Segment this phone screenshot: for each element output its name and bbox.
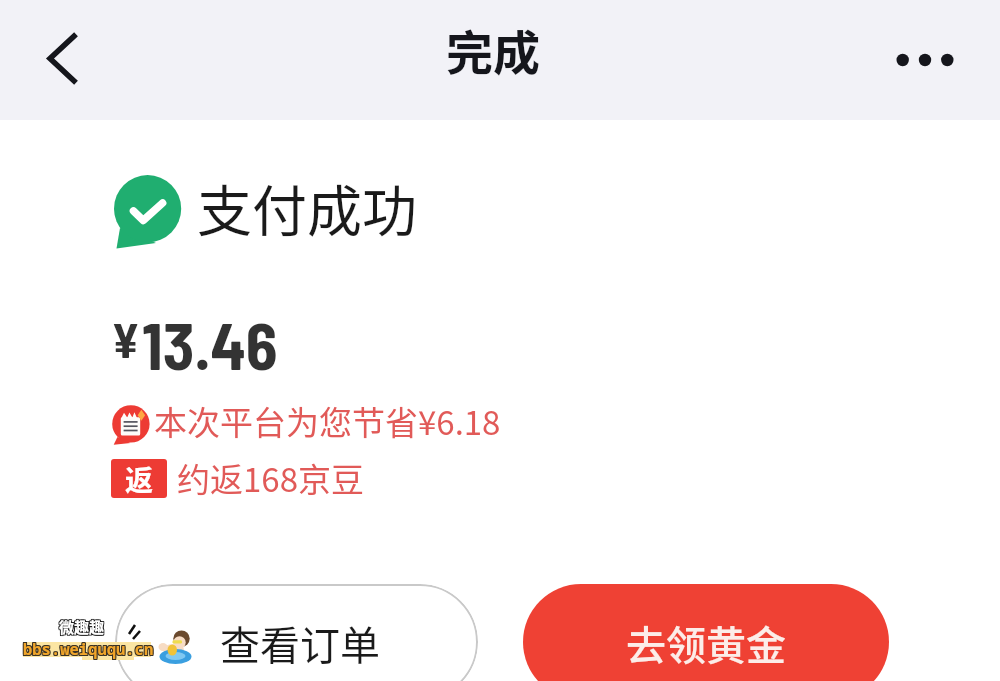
staticText: 微趣趣 — [60, 617, 106, 639]
staticText: ¥ — [111, 310, 141, 368]
button[interactable]: 查看订单 — [115, 584, 478, 681]
button[interactable]: 去领黄金 — [523, 584, 889, 681]
staticText: bbs.weiququ.cn — [23, 637, 154, 658]
staticText: 微趣趣 — [59, 617, 105, 639]
staticText: 返 — [125, 459, 154, 498]
staticText: bbs.weiququ.cn — [24, 637, 155, 658]
staticText: 去领黄金 — [626, 614, 786, 672]
staticText: 微趣趣 — [60, 615, 106, 637]
staticText: bbs.weiququ.cn — [22, 639, 153, 660]
staticText: bbs.weiququ.cn — [22, 638, 153, 659]
staticText: 支付成功 — [197, 167, 418, 247]
staticText: 完成 — [446, 15, 540, 83]
staticText: 微趣趣 — [58, 615, 104, 637]
staticText: bbs.weiququ.cn — [23, 639, 154, 660]
staticText: 查看订单 — [220, 614, 380, 672]
staticText: bbs.weiququ.cn — [24, 638, 155, 659]
staticText: 微趣趣 — [59, 615, 105, 637]
staticText: 微趣趣 — [60, 616, 106, 638]
staticText: bbs.weiququ.cn — [24, 639, 155, 660]
button[interactable]: Back — [24, 24, 96, 96]
staticText: 13.46 — [142, 305, 278, 383]
staticText: bbs.weiququ.cn — [22, 637, 153, 658]
staticText: 微趣趣 — [58, 617, 104, 639]
staticText: 微趣趣 — [59, 616, 105, 638]
staticText: bbs.weiququ.cn — [23, 638, 154, 659]
button[interactable]: More options — [888, 27, 978, 93]
staticText: 约返168京豆 — [177, 454, 364, 502]
staticText: 微趣趣 — [58, 616, 104, 638]
staticText: 本次平台为您节省¥6.18 — [154, 397, 501, 445]
